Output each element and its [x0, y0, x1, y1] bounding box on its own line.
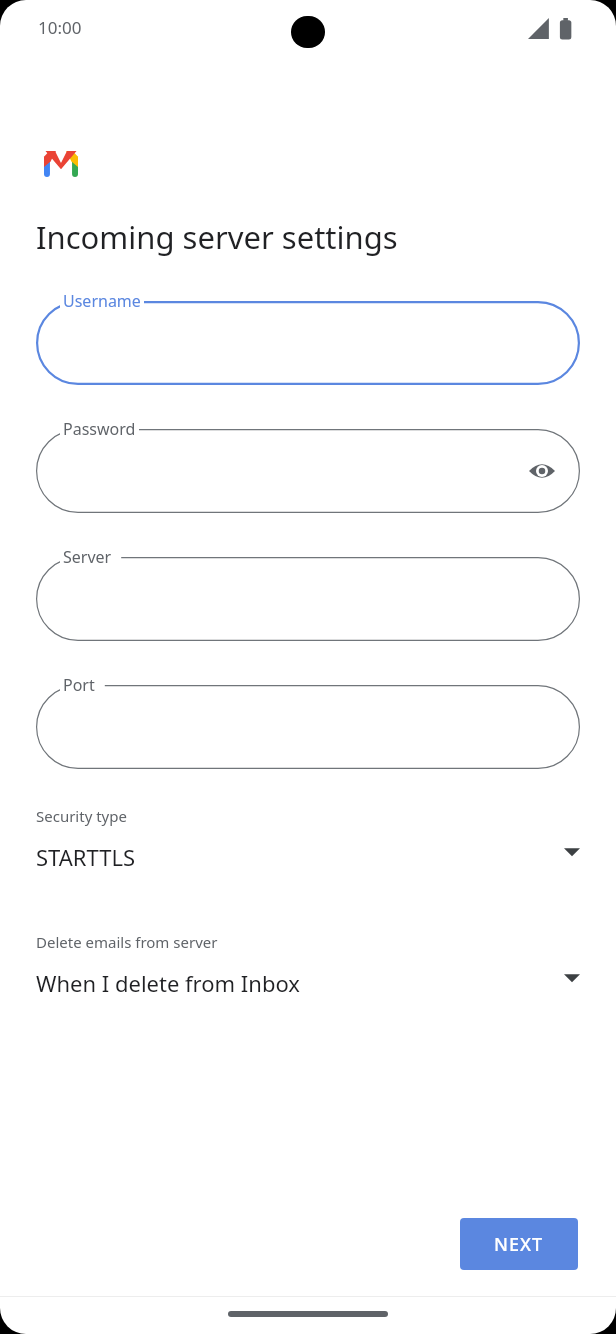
button[interactable]: Security type — [0, 800, 616, 880]
staticText: Delete emails from server — [36, 932, 218, 952]
button[interactable]: Show password — [522, 451, 562, 491]
button[interactable]: Username — [36, 301, 580, 385]
staticText: Username — [63, 290, 141, 312]
staticText: Security type — [36, 806, 127, 826]
staticText: When I delete from Inbox — [36, 968, 300, 998]
staticText: Incoming server settings — [36, 216, 398, 258]
button[interactable]: NEXT — [460, 1218, 578, 1270]
staticText: Password — [63, 418, 136, 440]
staticText: Server — [63, 546, 112, 568]
staticText: Port — [63, 674, 95, 696]
staticText: STARTTLS — [36, 842, 136, 872]
staticText: 10:00 — [38, 16, 82, 39]
button[interactable]: Port — [36, 685, 580, 769]
button[interactable]: Password — [36, 429, 580, 513]
button[interactable]: Server — [36, 557, 580, 641]
button[interactable]: Delete emails from server — [0, 926, 616, 1006]
staticText: NEXT — [494, 1232, 544, 1257]
